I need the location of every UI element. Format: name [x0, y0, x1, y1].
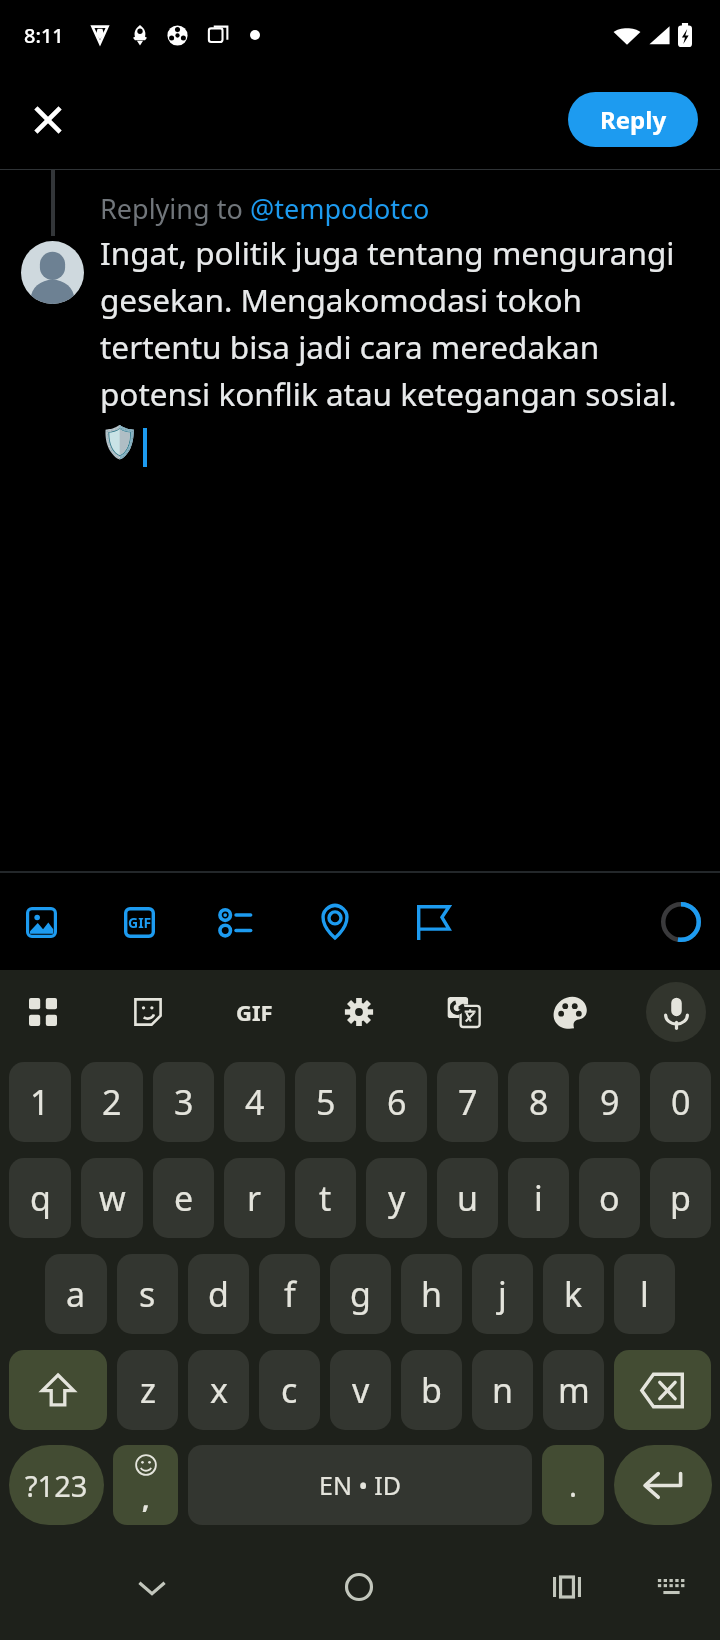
button[interactable]: Shift — [9, 1350, 107, 1430]
button[interactable]: Recents — [537, 1557, 597, 1617]
staticText: 1 — [30, 1079, 50, 1125]
staticText: g — [350, 1271, 371, 1317]
staticText: m — [558, 1367, 590, 1413]
staticText: y — [388, 1175, 406, 1221]
staticText: o — [599, 1175, 620, 1221]
button[interactable]: Close — [12, 84, 84, 156]
button[interactable]: u — [437, 1158, 498, 1238]
button[interactable]: Stickers — [119, 983, 177, 1041]
button[interactable]: d — [188, 1254, 249, 1334]
staticText: v — [352, 1367, 370, 1413]
button[interactable]: w — [81, 1158, 143, 1238]
button[interactable]: Reply — [568, 92, 698, 147]
button[interactable]: p — [650, 1158, 711, 1238]
button[interactable]: Character count — [651, 892, 711, 952]
staticText: , — [142, 1481, 150, 1516]
staticText: GIF — [236, 997, 273, 1027]
button[interactable]: ?123 — [9, 1445, 104, 1525]
staticText: h — [421, 1271, 443, 1317]
staticText: EN • ID — [319, 1468, 402, 1502]
button[interactable]: 3 — [153, 1062, 214, 1142]
button[interactable]: Translate — [435, 983, 493, 1041]
button[interactable]: Add photo — [0, 877, 90, 967]
button[interactable]: Switch keyboard — [641, 1557, 701, 1617]
button[interactable]: Add topic — [384, 877, 482, 967]
button[interactable]: 0 — [650, 1062, 711, 1142]
staticText: x — [210, 1367, 228, 1413]
button[interactable]: r — [224, 1158, 285, 1238]
button[interactable]: o — [579, 1158, 640, 1238]
staticText: 8:11 — [24, 22, 64, 49]
staticText: s — [139, 1271, 156, 1317]
button[interactable]: EN • ID — [188, 1445, 532, 1525]
button[interactable]: t — [295, 1158, 356, 1238]
button[interactable]: q — [9, 1158, 71, 1238]
button[interactable]: Add GIF — [90, 877, 188, 967]
button[interactable]: c — [259, 1350, 320, 1430]
staticText: Replying to — [100, 190, 250, 227]
staticText: c — [281, 1367, 298, 1413]
staticText: 5 — [316, 1079, 336, 1125]
button[interactable]: n — [472, 1350, 533, 1430]
button[interactable]: Themes — [541, 983, 599, 1041]
staticText: 9 — [600, 1079, 620, 1125]
staticText: Reply — [600, 103, 667, 136]
button[interactable]: z — [117, 1350, 178, 1430]
staticText: . — [569, 1465, 578, 1506]
button[interactable]: e — [153, 1158, 214, 1238]
button[interactable]: s — [117, 1254, 178, 1334]
button[interactable]: b — [401, 1350, 462, 1430]
button[interactable]: Add poll — [188, 877, 286, 967]
button[interactable]: l — [614, 1254, 675, 1334]
staticText: f — [284, 1271, 296, 1317]
button[interactable]: x — [188, 1350, 249, 1430]
button[interactable]: Voice input — [646, 982, 706, 1042]
button[interactable]: Apps — [14, 983, 72, 1041]
button[interactable]: Enter — [614, 1445, 712, 1525]
button[interactable]: Home — [329, 1557, 389, 1617]
staticText: 8 — [529, 1079, 549, 1125]
staticText: u — [457, 1175, 479, 1221]
staticText: w — [99, 1175, 126, 1221]
button[interactable]: g — [330, 1254, 391, 1334]
staticText: i — [534, 1175, 543, 1221]
staticText: e — [174, 1175, 194, 1221]
staticText: 2 — [102, 1079, 122, 1125]
staticText: b — [421, 1367, 442, 1413]
button[interactable]: k — [543, 1254, 604, 1334]
button[interactable]: 8 — [508, 1062, 569, 1142]
button[interactable]: j — [472, 1254, 533, 1334]
button[interactable]: 2 — [81, 1062, 143, 1142]
button[interactable]: . — [542, 1445, 604, 1525]
staticText: 4 — [245, 1079, 265, 1125]
staticText: z — [140, 1367, 156, 1413]
staticText: @tempodotco — [250, 190, 430, 227]
staticText: t — [319, 1175, 332, 1221]
staticText: Ingat, politik juga tentang mengurangi g… — [100, 231, 700, 461]
button[interactable]: m — [543, 1350, 604, 1430]
button[interactable]: a — [45, 1254, 107, 1334]
button[interactable]: h — [401, 1254, 462, 1334]
staticText: j — [498, 1271, 507, 1317]
button[interactable]: f — [259, 1254, 320, 1334]
button[interactable]: y — [366, 1158, 427, 1238]
button[interactable]: Backspace — [614, 1350, 711, 1430]
staticText: p — [670, 1175, 691, 1221]
button[interactable]: 7 — [437, 1062, 498, 1142]
button[interactable]: GIF — [225, 983, 283, 1041]
button[interactable]: i — [508, 1158, 569, 1238]
staticText: r — [247, 1175, 262, 1221]
button[interactable]: 6 — [366, 1062, 427, 1142]
button[interactable]: 5 — [295, 1062, 356, 1142]
button[interactable]: 4 — [224, 1062, 285, 1142]
button[interactable]: Settings — [330, 983, 388, 1041]
button[interactable]: 1 — [9, 1062, 71, 1142]
button[interactable]: Hide keyboard — [122, 1557, 182, 1617]
staticText: q — [30, 1175, 51, 1221]
button[interactable]: 9 — [579, 1062, 640, 1142]
button[interactable]: Emoji and comma — [113, 1445, 178, 1525]
button[interactable]: Add location — [286, 877, 384, 967]
staticText: ?123 — [25, 1466, 88, 1505]
staticText: a — [66, 1271, 86, 1317]
button[interactable]: v — [330, 1350, 391, 1430]
